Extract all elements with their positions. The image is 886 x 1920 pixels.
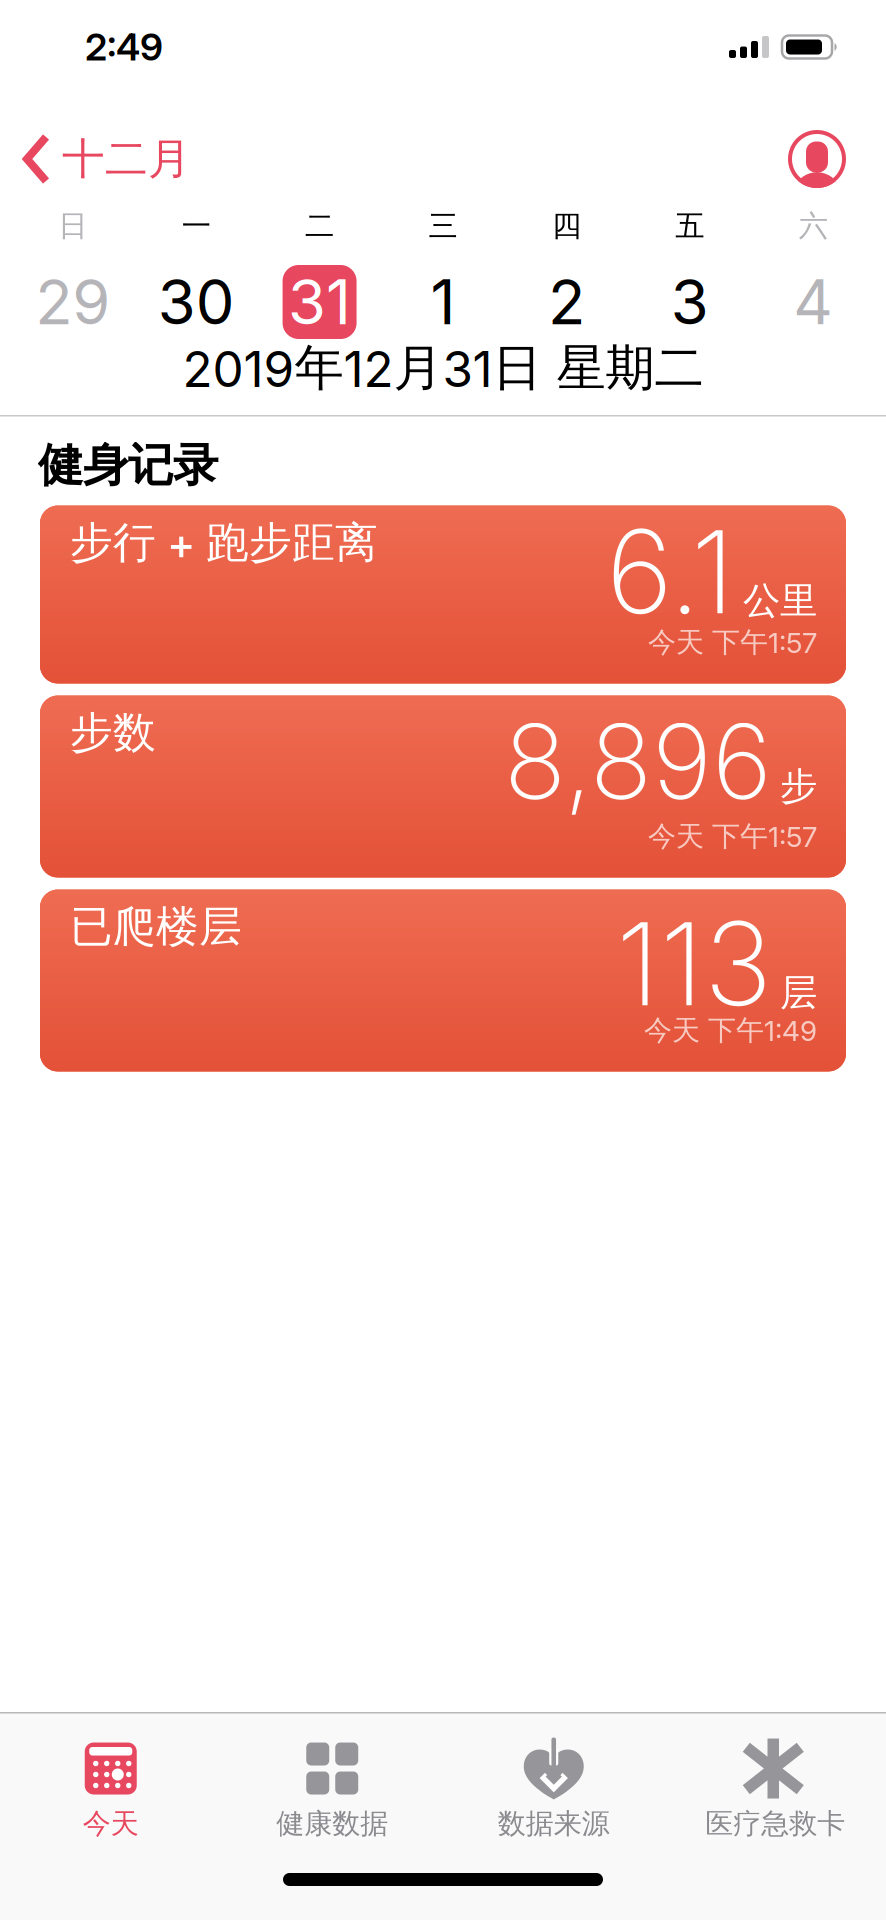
staticText: 一 <box>182 208 211 244</box>
button[interactable]: 3 <box>628 266 751 338</box>
button[interactable]: 步数 <box>40 695 846 877</box>
staticText: 6.1 <box>606 502 735 641</box>
staticText: 层 <box>780 970 817 1016</box>
staticText: 医疗急救卡 <box>705 1806 845 1841</box>
staticText: 4 <box>793 266 833 338</box>
staticText: 数据来源 <box>498 1806 610 1841</box>
staticText: 29 <box>35 266 110 338</box>
staticText: 健康数据 <box>276 1806 388 1841</box>
staticText: 113 <box>616 894 772 1033</box>
button[interactable]: 1 <box>381 266 505 338</box>
staticText: 2019年12月31日 星期二 <box>182 338 703 398</box>
staticText: 1 <box>430 266 455 338</box>
staticText: 三 <box>428 208 457 244</box>
staticText: 31 <box>288 266 351 338</box>
staticText: 8,896 <box>504 699 772 824</box>
staticText: 二 <box>305 208 334 244</box>
button[interactable]: 数据来源 <box>443 1738 664 1841</box>
staticText: 日 <box>58 208 87 244</box>
button[interactable]: 2 <box>505 266 628 338</box>
staticText: 步数 <box>70 706 156 759</box>
staticText: 今天 <box>83 1806 139 1841</box>
staticText: 十二月 <box>62 133 191 185</box>
button[interactable]: 4 <box>752 266 875 338</box>
staticText: 2 <box>548 266 585 338</box>
staticText: 今天 下午1:57 <box>648 625 817 659</box>
button[interactable]: 十二月 <box>22 133 191 185</box>
staticText: 3 <box>671 266 709 338</box>
staticText: 今天 下午1:57 <box>648 819 817 853</box>
staticText: 步 <box>780 763 817 809</box>
button[interactable]: 医疗急救卡 <box>664 1738 886 1841</box>
button[interactable] <box>788 130 846 188</box>
staticText: 四 <box>552 208 581 244</box>
staticText: 今天 下午1:49 <box>644 1013 817 1047</box>
button[interactable]: 29 <box>11 266 134 338</box>
staticText: 五 <box>675 208 704 244</box>
staticText: 健身记录 <box>38 438 218 493</box>
button[interactable]: 今天 <box>0 1738 221 1841</box>
button[interactable]: 31 <box>258 265 381 339</box>
button[interactable]: 已爬楼层 <box>40 889 846 1071</box>
staticText: 已爬楼层 <box>70 900 242 953</box>
staticText: 公里 <box>743 578 817 624</box>
staticText: 六 <box>799 208 828 244</box>
button[interactable]: 健康数据 <box>221 1738 443 1841</box>
button[interactable]: 步行 + 跑步距离 <box>40 505 846 683</box>
button[interactable]: 30 <box>134 266 258 338</box>
staticText: 步行 + 跑步距离 <box>70 516 378 569</box>
staticText: 2:49 <box>85 25 163 69</box>
staticText: 30 <box>158 266 235 338</box>
